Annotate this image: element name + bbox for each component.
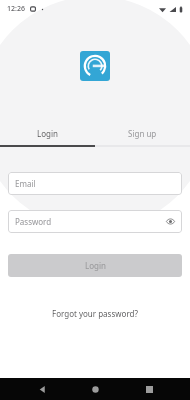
staticText: Login <box>37 128 58 139</box>
other: Show password <box>166 217 175 226</box>
button[interactable]: Forgot your password? <box>42 304 148 323</box>
button[interactable]: Back <box>30 378 54 400</box>
staticText: Login <box>85 260 106 271</box>
button[interactable]: Login <box>8 254 182 277</box>
button[interactable]: Login <box>0 125 95 142</box>
staticText: Email <box>15 178 36 189</box>
button[interactable]: Password <box>8 210 182 233</box>
staticText: 12:26 <box>7 4 25 14</box>
button[interactable]: App logo <box>80 51 110 81</box>
button[interactable]: Sign up <box>95 125 190 142</box>
button[interactable]: Email <box>8 172 182 195</box>
staticText: Forgot your password? <box>52 308 138 319</box>
button[interactable]: Recent apps <box>137 378 161 400</box>
staticText: Sign up <box>128 128 157 139</box>
button[interactable]: Home <box>83 378 107 400</box>
staticText: Password <box>15 216 52 227</box>
